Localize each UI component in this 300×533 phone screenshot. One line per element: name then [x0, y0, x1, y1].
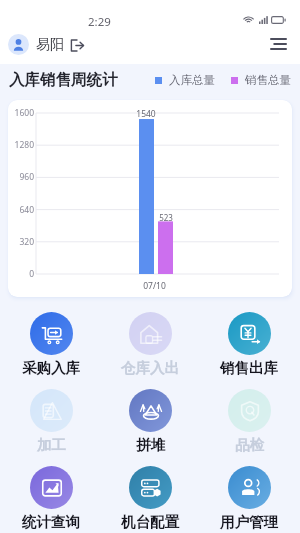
button[interactable]: 拼堆 [102, 389, 198, 454]
button[interactable]: 统计查询 [3, 466, 99, 531]
staticText: 入库销售周统计 [9, 70, 118, 90]
staticText: 1540 [136, 108, 156, 120]
staticText: 320 [19, 236, 34, 248]
staticText: 0 [29, 268, 34, 280]
staticText: 2:29 [88, 14, 111, 30]
staticText: 品检 [235, 436, 264, 454]
staticText: 销售出库 [220, 359, 278, 377]
button[interactable]: 仓库入出 [102, 312, 198, 377]
staticText: 入库总量 [169, 73, 215, 87]
button[interactable]: 销售出库 [201, 312, 297, 377]
staticText: 640 [19, 204, 34, 216]
staticText: 用户管理 [220, 513, 278, 531]
staticText: 易阳 [36, 36, 64, 54]
staticText: 1600 [14, 107, 34, 119]
button[interactable]: Profile [8, 34, 29, 55]
staticText: 960 [19, 171, 34, 183]
staticText: 仓库入出 [121, 359, 179, 377]
staticText: 机台配置 [121, 513, 179, 531]
staticText: 统计查询 [22, 513, 80, 531]
staticText: 1280 [14, 139, 34, 151]
button[interactable]: 品检 [201, 389, 297, 454]
button[interactable]: 加工 [3, 389, 99, 454]
staticText: 加工 [37, 436, 66, 454]
staticText: 07/10 [143, 280, 166, 292]
staticText: 采购入库 [22, 359, 80, 377]
button[interactable]: 采购入库 [3, 312, 99, 377]
staticText: 销售总量 [245, 73, 291, 87]
staticText: 523 [159, 212, 173, 223]
button[interactable]: 用户管理 [201, 466, 297, 531]
staticText: 拼堆 [136, 436, 165, 454]
button[interactable]: 机台配置 [102, 466, 198, 531]
button[interactable]: Menu [260, 26, 296, 62]
button[interactable]: Logout [69, 37, 85, 53]
